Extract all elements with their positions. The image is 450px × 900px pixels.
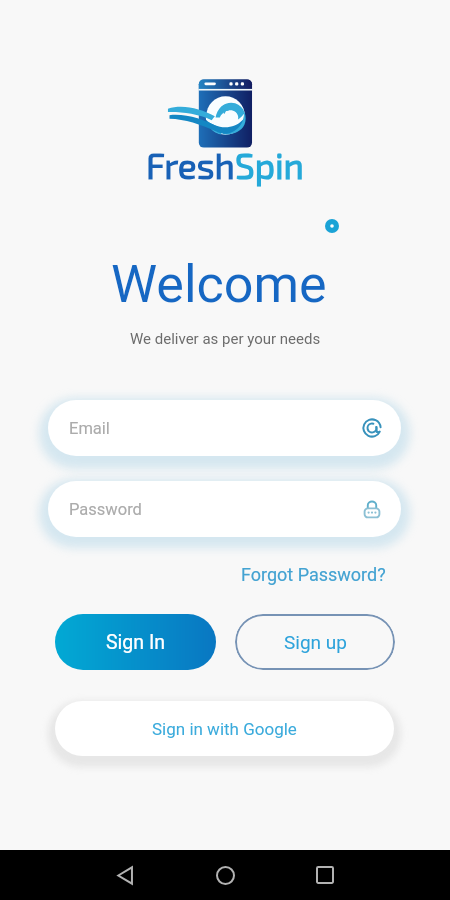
staticText: Forgot Password? <box>241 564 386 585</box>
other: Email <box>362 418 382 438</box>
staticText: Fresh <box>146 144 235 186</box>
button[interactable]: Sign In <box>55 614 216 670</box>
button[interactable]: Sign up <box>235 614 395 670</box>
button[interactable]: Forgot Password? <box>238 561 389 588</box>
button[interactable]: Sign in with Google <box>55 701 394 756</box>
button[interactable]: Recent apps <box>303 853 347 897</box>
other: Password <box>362 499 382 519</box>
button[interactable]: Back <box>103 853 147 897</box>
staticText: Sign In <box>106 631 165 654</box>
staticText: Email <box>69 419 110 438</box>
button[interactable]: Email <box>48 400 401 456</box>
staticText: Spin <box>235 144 304 186</box>
button[interactable]: Home <box>203 853 247 897</box>
button[interactable]: Password <box>48 481 401 537</box>
staticText: Welcome <box>111 254 327 315</box>
staticText: Password <box>69 500 142 519</box>
staticText: Sign up <box>284 631 347 653</box>
staticText: We deliver as per your needs <box>130 330 321 348</box>
staticText: Sign in with Google <box>152 719 297 739</box>
